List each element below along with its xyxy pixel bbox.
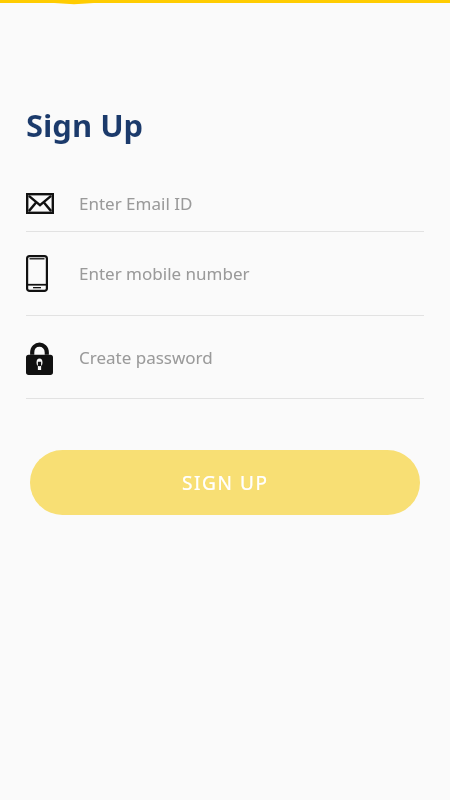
button[interactable]: Mobile number	[0, 232, 450, 315]
button[interactable]: Password	[0, 316, 450, 398]
button[interactable]: SIGN UP	[30, 450, 420, 515]
other: Email	[26, 193, 79, 214]
staticText: Enter mobile number	[79, 262, 250, 285]
staticText: Sign Up	[26, 104, 144, 146]
staticText: Enter Email ID	[79, 192, 193, 215]
staticText: SIGN UP	[182, 470, 269, 496]
button[interactable]: Email	[0, 175, 450, 231]
other: Mobile number	[26, 255, 79, 292]
staticText: Create password	[79, 346, 213, 369]
other: Password	[26, 340, 79, 375]
